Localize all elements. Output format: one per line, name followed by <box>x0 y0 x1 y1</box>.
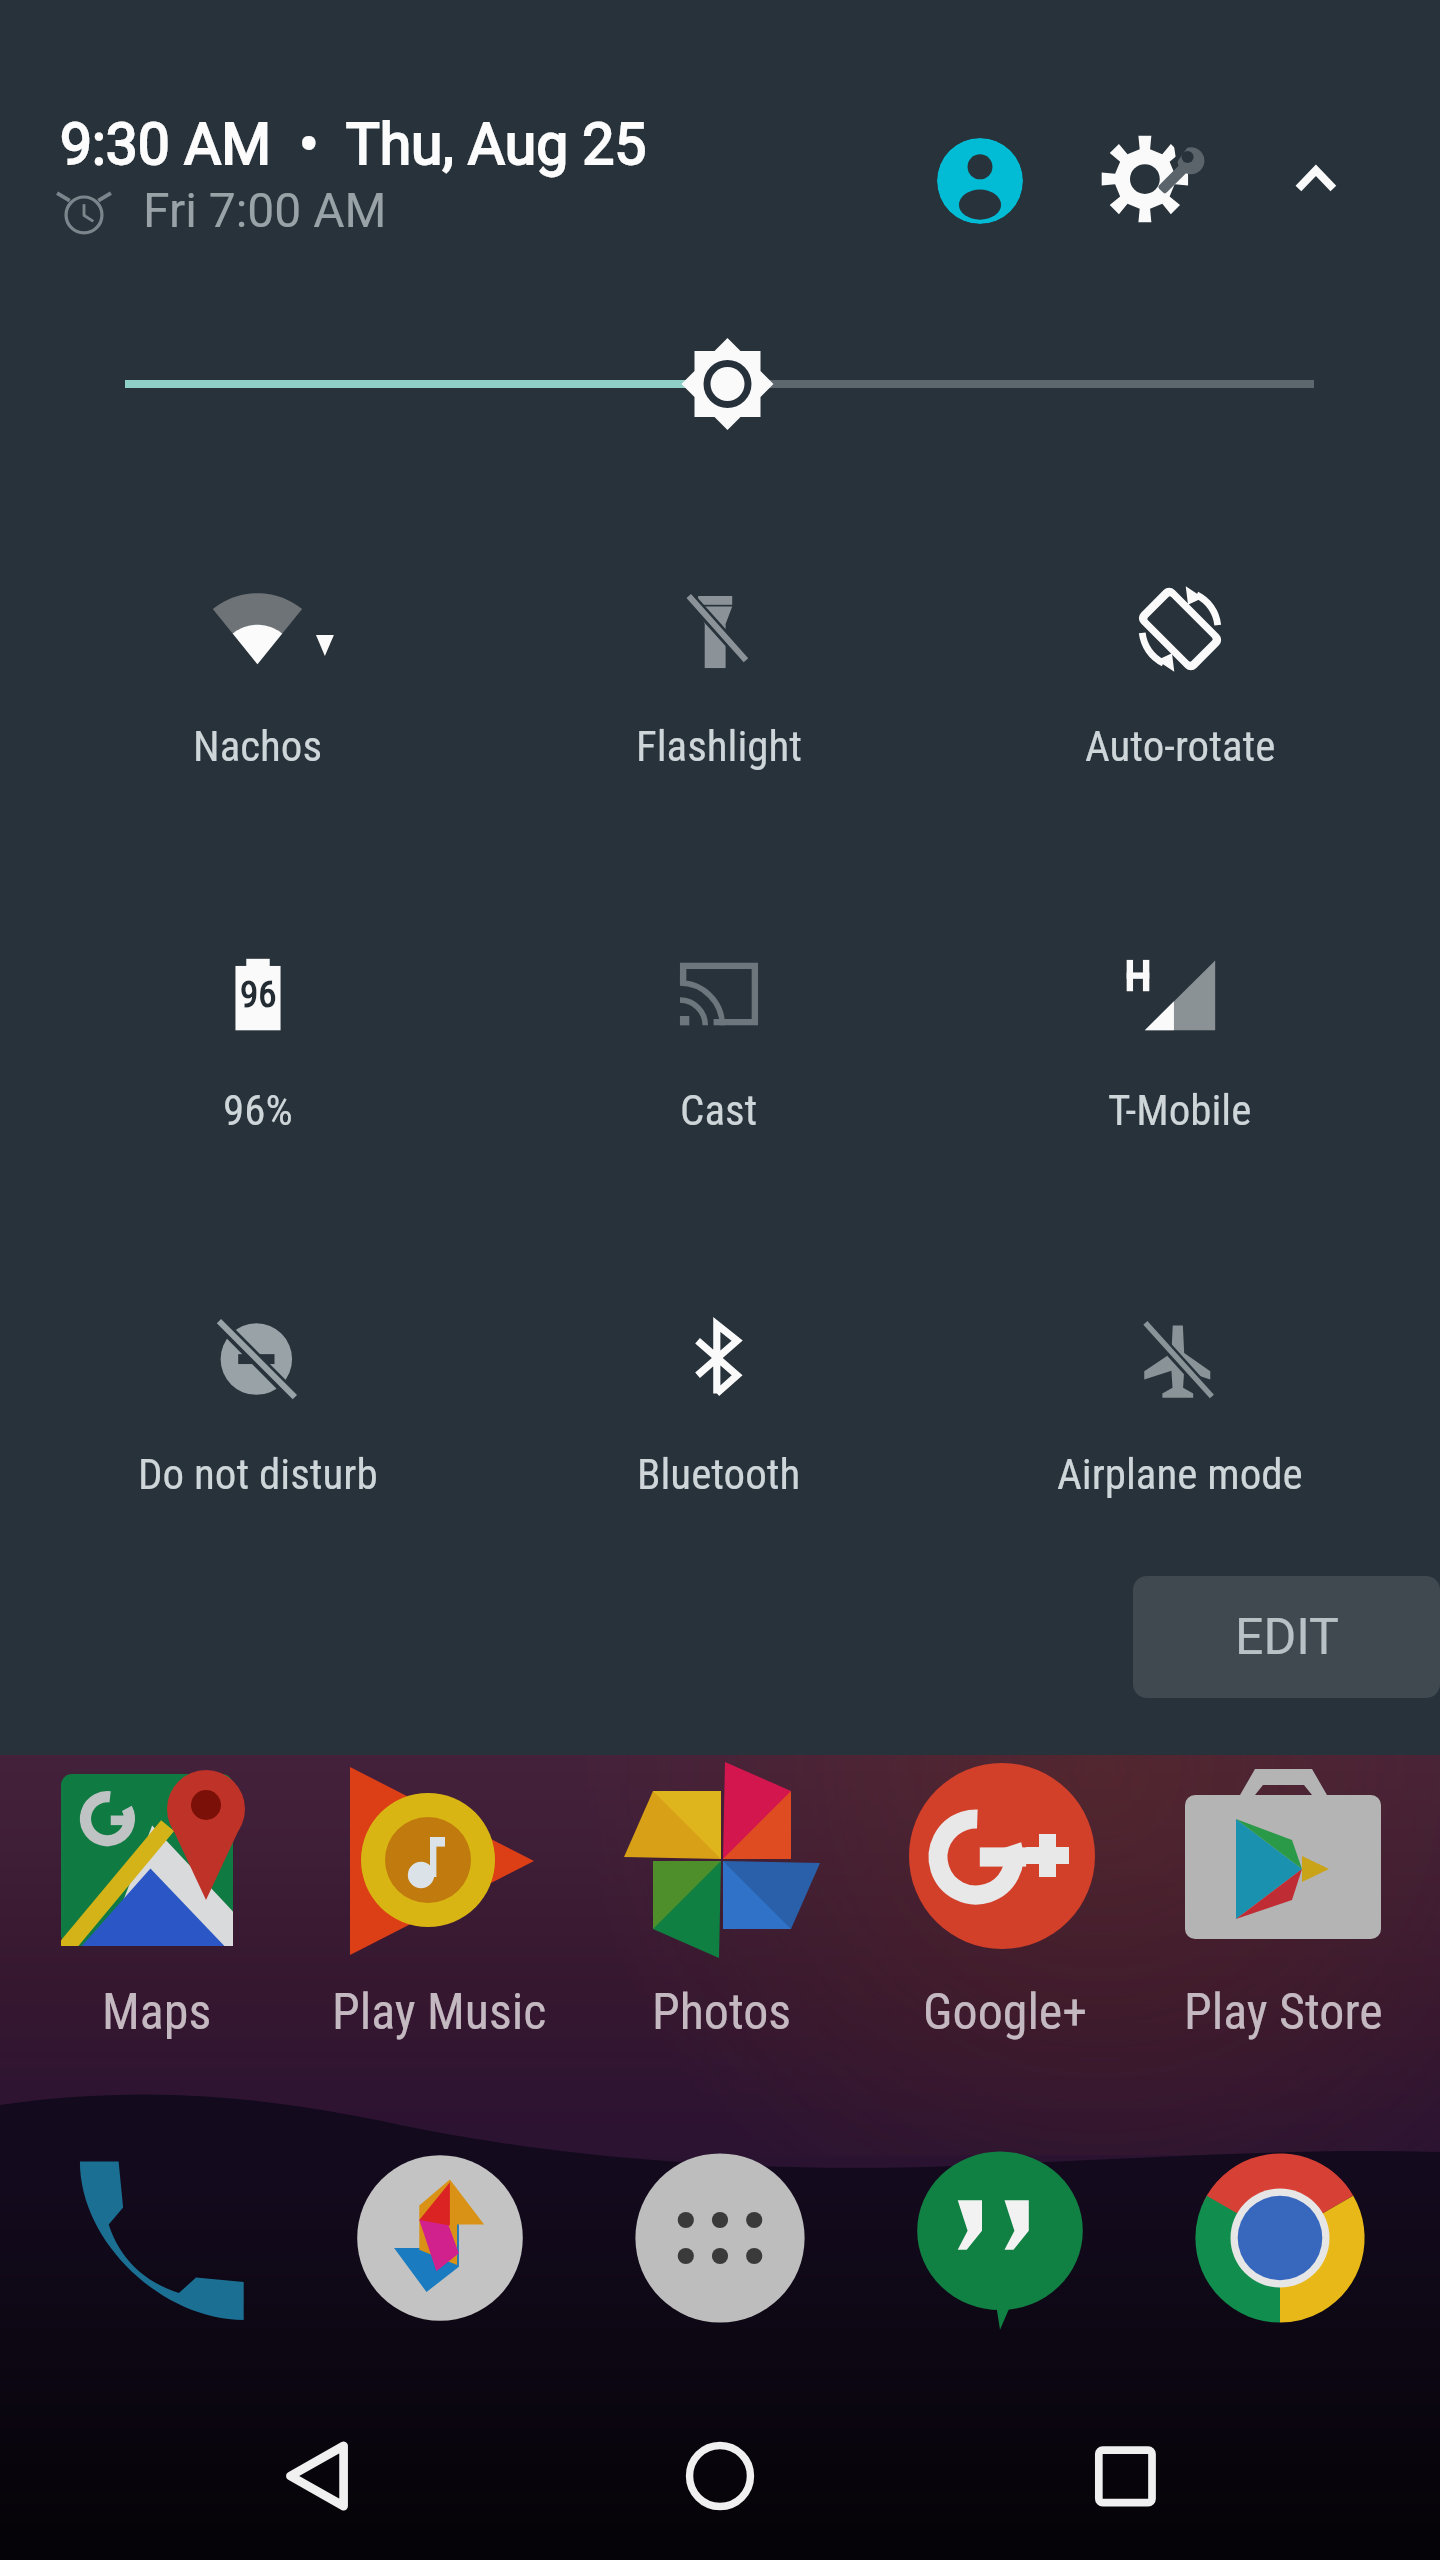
staticText: Fri 7:00 AM <box>143 182 387 238</box>
staticText: Bluetooth <box>637 1449 801 1499</box>
button[interactable]: Gallery <box>350 2148 530 2328</box>
button[interactable] <box>950 519 1410 779</box>
staticText: EDIT <box>1235 1608 1339 1667</box>
button[interactable]: Photos <box>582 1760 862 2050</box>
button[interactable]: Collapse <box>1276 141 1352 217</box>
staticText: 96% <box>223 1085 293 1135</box>
button[interactable] <box>489 1248 949 1508</box>
button[interactable]: EDIT <box>1133 1576 1440 1698</box>
staticText: Photos <box>652 1983 792 2042</box>
staticText: T-Mobile <box>1108 1085 1252 1135</box>
button[interactable] <box>950 1248 1410 1508</box>
button[interactable]: Settings <box>1106 132 1246 228</box>
button[interactable] <box>489 519 949 779</box>
staticText: Maps <box>102 1983 212 2042</box>
button[interactable]: Maps <box>17 1760 297 2050</box>
button[interactable]: Chrome <box>1190 2148 1370 2328</box>
staticText: Airplane mode <box>1057 1449 1303 1499</box>
staticText: Google+ <box>923 1983 1088 2042</box>
staticText: Flashlight <box>636 721 802 771</box>
button[interactable] <box>489 884 949 1144</box>
staticText: Nachos <box>193 721 323 771</box>
staticText: Cast <box>680 1085 758 1135</box>
button[interactable] <box>28 519 488 779</box>
staticText: Auto-rotate <box>1085 721 1276 771</box>
staticText: 96 <box>240 973 277 1016</box>
button[interactable]: Play Music <box>299 1760 579 2050</box>
button[interactable]: Play Store <box>1143 1760 1423 2050</box>
button[interactable] <box>28 1248 488 1508</box>
button[interactable]: Back <box>247 2406 387 2546</box>
staticText: 9:30 AM • Thu, Aug 25 <box>60 111 647 178</box>
button[interactable] <box>28 884 488 1144</box>
button[interactable]: Phone <box>70 2148 250 2328</box>
staticText: Do not disturb <box>138 1449 378 1499</box>
button[interactable]: User profile <box>937 138 1023 224</box>
button[interactable] <box>950 884 1410 1144</box>
button[interactable]: Google+ <box>865 1760 1145 2050</box>
button[interactable]: Hangouts <box>910 2148 1090 2328</box>
staticText: Play Music <box>332 1983 547 2042</box>
button[interactable]: Fri 7:00 AM <box>58 182 387 238</box>
staticText: Play Store <box>1184 1983 1383 2042</box>
button[interactable]: Home <box>650 2406 790 2546</box>
button[interactable]: Recents <box>1055 2406 1195 2546</box>
button[interactable]: 9:30 AM • Thu, Aug 25 <box>60 111 647 178</box>
button[interactable]: Apps <box>630 2148 810 2328</box>
button[interactable] <box>0 330 1440 440</box>
